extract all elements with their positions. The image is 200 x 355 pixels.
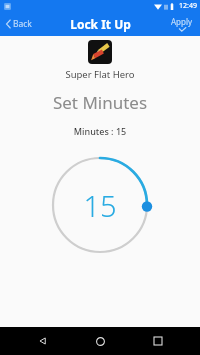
button[interactable]: Back [0,15,38,33]
staticText: 15 [83,186,117,225]
staticText: Minutes : 15 [0,125,200,137]
button[interactable]: Super Flat Hero app icon [88,40,112,64]
button[interactable]: Recent apps [143,327,173,355]
button[interactable]: Back [28,327,58,355]
staticText: Back [13,18,32,30]
staticText: 12:49 [179,1,197,11]
staticText: Apply [171,16,193,27]
staticText: Lock It Up [70,16,131,32]
button[interactable]: Minutes dial, 15 minutes [44,149,156,261]
button[interactable]: Home [85,327,115,355]
staticText: Super Flat Hero [0,68,200,81]
staticText: Set Minutes [0,91,200,114]
button[interactable]: Apply [164,15,200,33]
